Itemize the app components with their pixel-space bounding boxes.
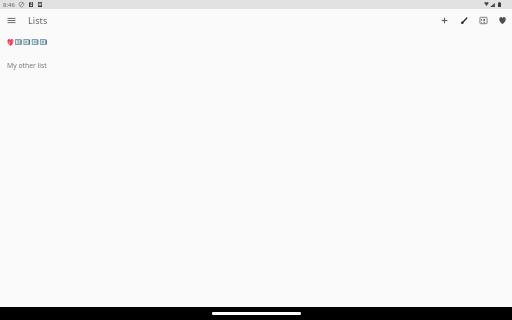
- button[interactable]: My other list: [0, 56, 512, 74]
- button[interactable]: Add new list: [435, 11, 454, 30]
- staticText: 8:46: [3, 1, 15, 9]
- button[interactable]: Change list layout: [474, 11, 493, 30]
- staticText: Lists: [28, 14, 48, 27]
- button[interactable]: Favorites: [493, 11, 512, 30]
- staticText: My other list: [7, 61, 47, 70]
- button[interactable]: Open navigation drawer: [2, 11, 21, 30]
- button[interactable]: [0, 34, 512, 50]
- button[interactable]: Edit with brush: [455, 11, 474, 30]
